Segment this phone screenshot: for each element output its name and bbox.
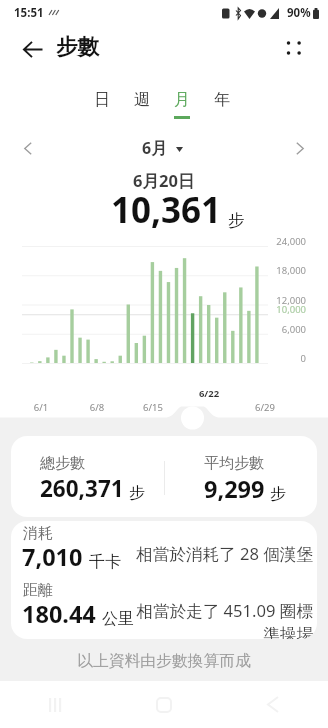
staticText: 步: [129, 483, 145, 503]
button[interactable]: 日: [94, 90, 110, 119]
staticText: 15:51: [14, 5, 44, 21]
staticText: 6/22: [189, 387, 229, 400]
staticText: 6/29: [245, 401, 285, 414]
button[interactable]: 月: [174, 90, 190, 119]
staticText: 平均步數: [204, 454, 264, 473]
staticText: 步: [270, 484, 286, 504]
staticText: 步數: [56, 33, 99, 60]
staticText: 90%: [287, 5, 311, 21]
staticText: 相當於消耗了 28 個漢堡: [136, 542, 313, 565]
staticText: 總步數: [40, 454, 85, 473]
staticText: 9,299: [204, 473, 265, 505]
staticText: 7,010: [22, 541, 83, 573]
button[interactable]: Next month: [286, 134, 314, 162]
staticText: 260,371: [40, 473, 124, 504]
staticText: 6/15: [133, 401, 173, 414]
staticText: 10,000: [246, 303, 306, 316]
staticText: 年: [214, 90, 230, 110]
staticText: 10,361: [111, 186, 222, 234]
staticText: 公里: [102, 609, 134, 629]
staticText: 週: [134, 90, 150, 110]
button[interactable]: 總步數: [11, 436, 317, 517]
button[interactable]: 週: [134, 90, 150, 119]
staticText: 月: [174, 90, 190, 110]
staticText: 24,000: [246, 235, 306, 248]
button[interactable]: 年: [214, 90, 230, 119]
button[interactable]: More options: [277, 29, 313, 65]
staticText: 千卡: [89, 552, 121, 572]
button[interactable]: Previous month: [14, 134, 42, 162]
staticText: 準操場: [263, 624, 313, 639]
staticText: 步: [228, 210, 245, 231]
staticText: 180.44: [22, 598, 96, 630]
staticText: 以上資料由步數換算而成: [0, 651, 328, 671]
staticText: 相當於走了 451.09 圈標: [136, 599, 313, 622]
staticText: 6/8: [77, 401, 117, 414]
staticText: 0: [246, 352, 306, 365]
button[interactable]: 6月: [142, 137, 183, 159]
staticText: 6,000: [246, 323, 306, 336]
staticText: 18,000: [246, 264, 306, 277]
staticText: 6/1: [21, 401, 61, 414]
staticText: 6月20日: [133, 169, 195, 192]
button[interactable]: 消耗: [11, 521, 317, 639]
staticText: 日: [94, 90, 110, 110]
button[interactable]: Back: [15, 31, 51, 67]
staticText: 消耗: [23, 524, 53, 543]
staticText: 12,000: [246, 294, 306, 307]
staticText: 6月: [142, 137, 168, 159]
staticText: 距離: [23, 581, 53, 600]
